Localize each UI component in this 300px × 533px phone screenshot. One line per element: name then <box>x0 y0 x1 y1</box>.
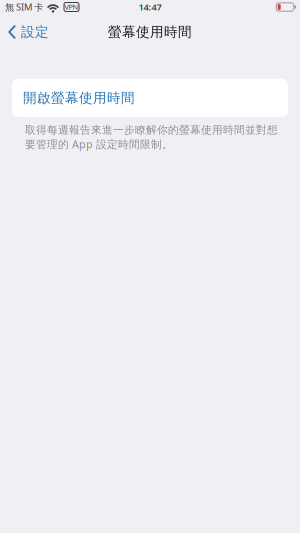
staticText: 設定 <box>21 24 49 40</box>
staticText: 14:47 <box>138 1 161 13</box>
button[interactable]: 設定 <box>0 17 59 47</box>
button[interactable]: 開啟螢幕使用時間 <box>12 79 288 117</box>
staticText: 無 SIM 卡 <box>5 1 43 13</box>
staticText: VPN <box>64 2 78 12</box>
staticText: 螢幕使用時間 <box>108 24 192 40</box>
staticText: 開啟螢幕使用時間 <box>23 90 135 106</box>
staticText: 取得每週報告來進一步瞭解你的螢幕使用時間並對想要管理的 App 設定時間限制。 <box>25 123 278 151</box>
